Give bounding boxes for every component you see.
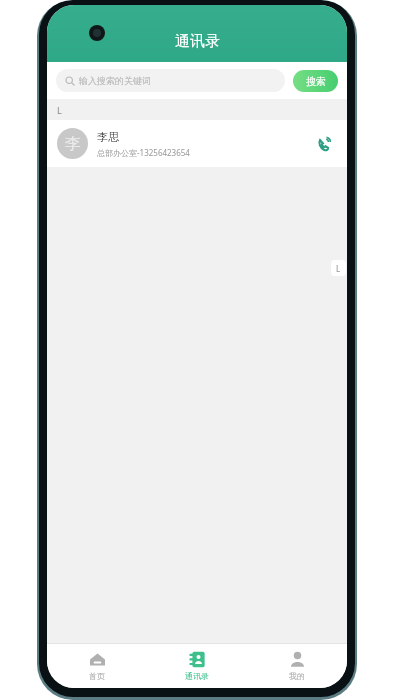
- button[interactable]: 我的: [247, 644, 347, 688]
- staticText: 通讯录: [175, 32, 220, 51]
- button[interactable]: 拨打电话: [311, 131, 337, 157]
- staticText: 总部办公室-13256423654: [97, 147, 190, 158]
- button[interactable]: L: [331, 260, 346, 276]
- staticText: L: [336, 263, 341, 274]
- staticText: 搜索: [306, 75, 326, 88]
- staticText: L: [57, 104, 62, 116]
- button[interactable]: 输入搜索的关键词: [56, 69, 285, 92]
- button[interactable]: 李: [47, 120, 347, 167]
- button[interactable]: 首页: [47, 644, 147, 688]
- button[interactable]: 通讯录: [147, 644, 247, 688]
- staticText: 李思: [97, 130, 119, 144]
- staticText: 我的: [289, 671, 305, 681]
- staticText: 输入搜索的关键词: [79, 75, 151, 86]
- staticText: 首页: [89, 671, 105, 681]
- staticText: 通讯录: [185, 671, 209, 681]
- button[interactable]: 搜索: [293, 70, 338, 92]
- staticText: 李: [65, 134, 81, 154]
